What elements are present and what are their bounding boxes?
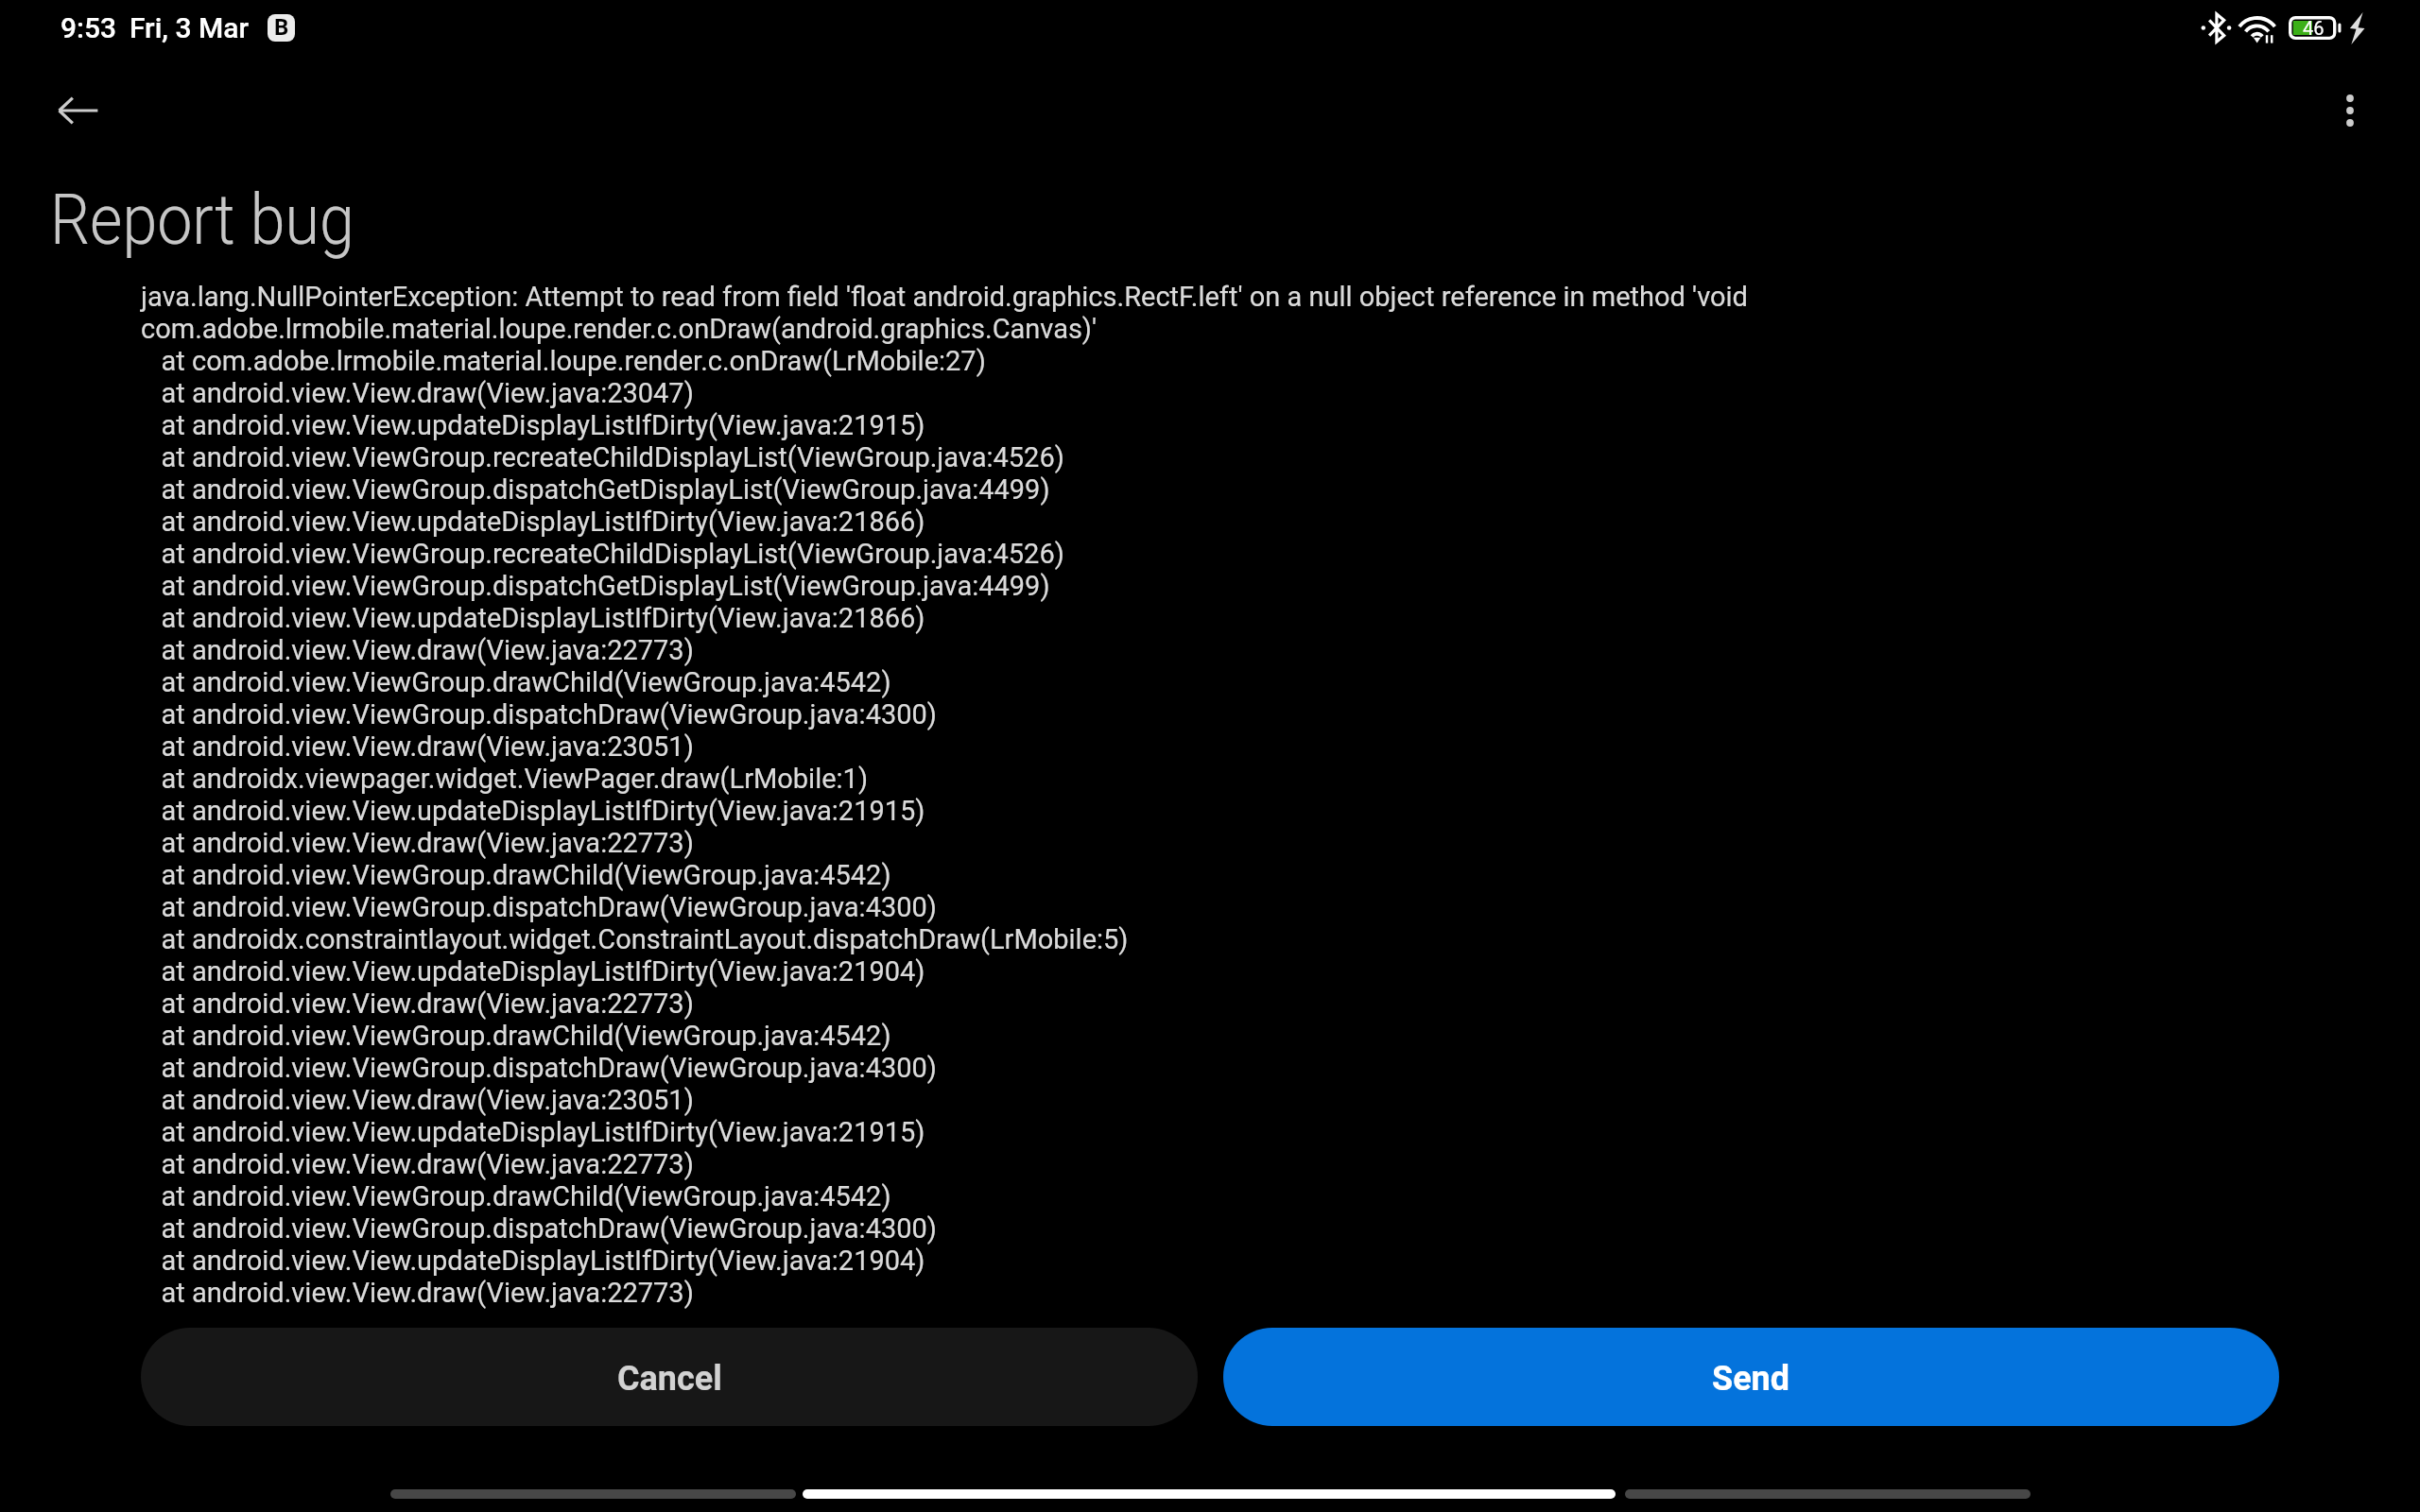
staticText: 9:53 <box>60 11 117 44</box>
staticText: Cancel <box>617 1359 722 1399</box>
staticText: Report bug <box>50 179 355 261</box>
button[interactable]: Cancel <box>141 1328 1198 1426</box>
staticText: java.lang.NullPointerException: Attempt … <box>141 281 1748 1309</box>
button[interactable]: More options <box>2301 61 2399 160</box>
button[interactable]: Send <box>1223 1328 2279 1426</box>
staticText: B <box>274 14 289 41</box>
staticText: 46 <box>2303 17 2325 39</box>
button[interactable]: Back <box>29 61 128 160</box>
staticText: Send <box>1712 1359 1790 1399</box>
staticText: Fri, 3 Mar <box>130 11 249 44</box>
